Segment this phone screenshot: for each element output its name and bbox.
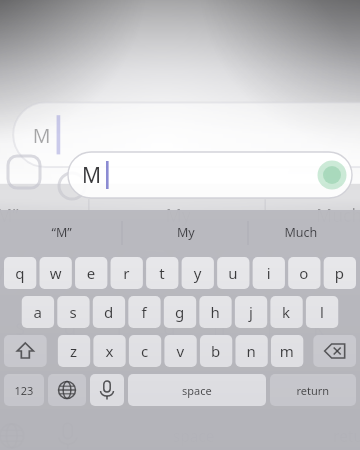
button[interactable]: Suggestion My [122, 214, 248, 248]
button[interactable]: n [235, 335, 267, 367]
button[interactable]: a [21, 296, 53, 328]
button[interactable]: Camera [6, 154, 42, 190]
button[interactable]: Suggestion “M” [0, 214, 122, 248]
button[interactable]: Shift [4, 335, 46, 367]
button[interactable]: m [270, 335, 302, 367]
button[interactable]: space [128, 374, 266, 406]
button[interactable]: j [234, 296, 266, 328]
button[interactable]: Suggestion Much [248, 214, 360, 248]
button[interactable]: Numbers [4, 374, 44, 406]
button[interactable]: l [305, 296, 337, 328]
button[interactable]: y [181, 257, 213, 289]
button[interactable]: u [217, 257, 249, 289]
button[interactable]: w [39, 257, 71, 289]
button[interactable]: r [110, 257, 142, 289]
button[interactable]: x [93, 335, 125, 367]
button[interactable]: o [288, 257, 320, 289]
button[interactable]: Apps [56, 170, 88, 202]
button[interactable]: h [199, 296, 231, 328]
button[interactable]: Next keyboard [48, 374, 86, 406]
button[interactable]: i [252, 257, 284, 289]
button[interactable]: c [128, 335, 160, 367]
button[interactable]: q [4, 257, 36, 289]
button[interactable]: k [270, 296, 302, 328]
button[interactable]: Backspace [313, 335, 355, 367]
button[interactable]: z [57, 335, 89, 367]
button[interactable]: f [128, 296, 160, 328]
button[interactable]: s [57, 296, 89, 328]
button[interactable]: v [164, 335, 196, 367]
button[interactable]: g [163, 296, 195, 328]
button[interactable]: return [270, 374, 356, 406]
button[interactable]: t [146, 257, 178, 289]
button[interactable]: d [92, 296, 124, 328]
button[interactable]: e [75, 257, 107, 289]
button[interactable]: Send [332, 163, 360, 191]
button[interactable]: Dictation [90, 374, 124, 406]
button[interactable]: Message text field [68, 152, 352, 198]
button[interactable]: b [199, 335, 231, 367]
button[interactable]: p [323, 257, 355, 289]
